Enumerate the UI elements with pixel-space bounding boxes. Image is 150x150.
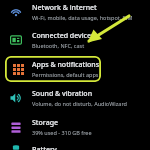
staticText: Apps & notifications [32, 60, 100, 70]
button[interactable]: Network and internet [0, 1, 150, 23]
staticText: Battery [32, 145, 57, 150]
staticText: Storage [32, 118, 58, 128]
staticText: Volume, do not disturb, AudioWizard [32, 100, 127, 107]
other: Battery [0, 145, 32, 150]
other: Connected devices [0, 34, 32, 46]
staticText: Permissions, default apps [32, 71, 99, 78]
button[interactable]: Sound and vibration [0, 87, 150, 109]
button[interactable]: Storage [0, 116, 150, 138]
other: Network and internet [0, 6, 32, 18]
other: Sound and vibration [0, 92, 32, 104]
staticText: 39% used - 310 GB free [32, 129, 92, 136]
staticText: Bluetooth, NFC, cast [32, 42, 85, 49]
staticText: Network & internet [32, 3, 97, 13]
other: Storage [0, 121, 32, 133]
button[interactable]: Battery [0, 145, 150, 150]
button[interactable]: Apps & notifications [5, 56, 101, 82]
staticText: Connected devices [32, 31, 95, 41]
staticText: Sound & vibration [32, 89, 93, 99]
staticText: Wi-Fi, mobile, data usage, hotspot, SIM [32, 14, 133, 21]
button[interactable]: Connected devices [0, 29, 150, 51]
